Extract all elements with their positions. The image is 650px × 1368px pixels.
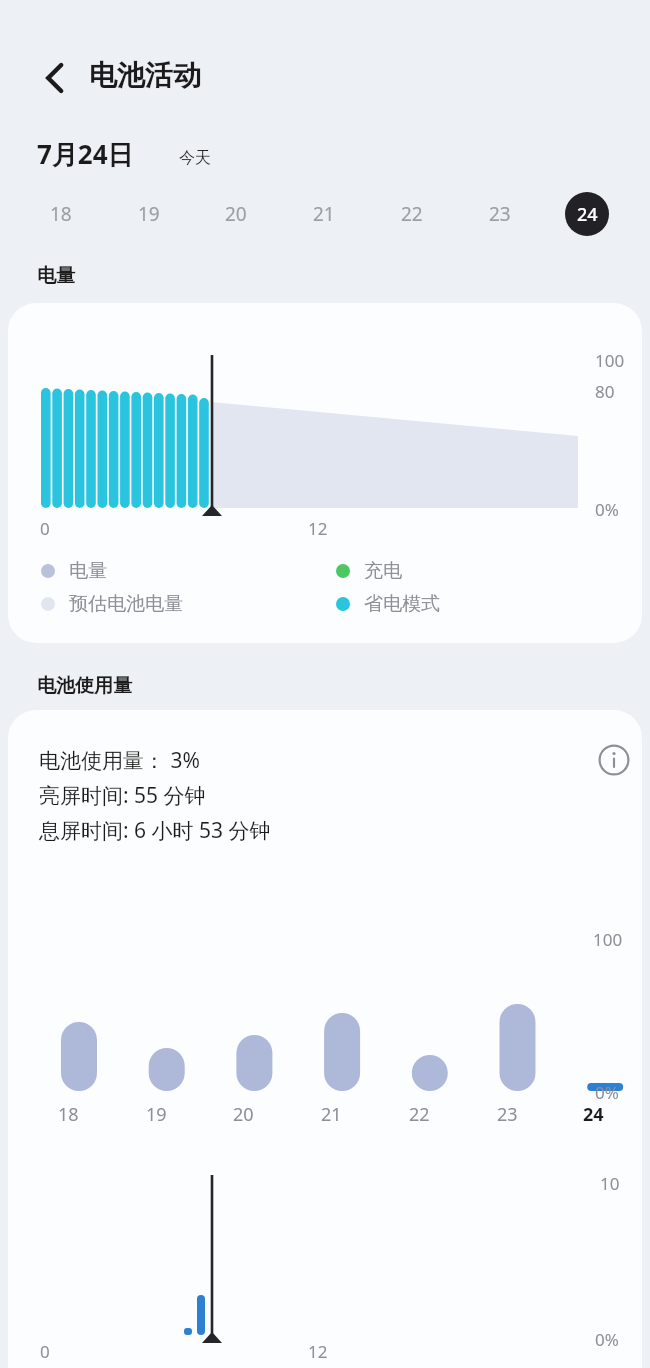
staticText: 23 bbox=[489, 201, 511, 227]
button[interactable]: 23 bbox=[478, 192, 522, 236]
staticText: 亮屏时间: 55 分钟 bbox=[39, 781, 206, 810]
staticText: 电池使用量： 3% bbox=[39, 746, 200, 775]
button[interactable]: 24 bbox=[565, 192, 609, 236]
staticText: 12 bbox=[308, 1340, 328, 1363]
staticText: 预估电池电量 bbox=[69, 592, 183, 616]
staticText: 19 bbox=[138, 201, 160, 227]
staticText: 23 bbox=[497, 1102, 518, 1127]
staticText: 22 bbox=[401, 201, 423, 227]
staticText: 电池活动 bbox=[89, 58, 201, 93]
staticText: 今天 bbox=[179, 148, 211, 168]
button[interactable]: 充电 bbox=[336, 559, 402, 583]
staticText: 21 bbox=[313, 201, 335, 227]
staticText: 10 bbox=[600, 1172, 620, 1195]
button[interactable]: 预估电池电量 bbox=[41, 592, 183, 616]
button[interactable]: 省电模式 bbox=[336, 592, 440, 616]
staticText: 电量 bbox=[37, 264, 75, 288]
staticText: 24 bbox=[583, 1102, 604, 1127]
staticText: 12 bbox=[308, 517, 328, 540]
staticText: 100 bbox=[595, 349, 625, 372]
staticText: 20 bbox=[225, 201, 247, 227]
staticText: 0 bbox=[40, 1340, 50, 1363]
button[interactable]: 20 bbox=[214, 192, 258, 236]
button[interactable]: 21 bbox=[302, 192, 346, 236]
staticText: 22 bbox=[409, 1102, 430, 1127]
staticText: 21 bbox=[321, 1102, 342, 1127]
staticText: 80 bbox=[595, 380, 615, 403]
staticText: 电池使用量 bbox=[37, 674, 132, 698]
staticText: 0 bbox=[40, 517, 50, 540]
staticText: 19 bbox=[146, 1102, 167, 1127]
staticText: 息屏时间: 6 小时 53 分钟 bbox=[39, 816, 271, 845]
staticText: 100 bbox=[593, 928, 623, 951]
staticText: 0% bbox=[595, 498, 619, 521]
button[interactable]: 电量 bbox=[41, 559, 107, 583]
staticText: 充电 bbox=[364, 559, 402, 583]
staticText: 24 bbox=[577, 202, 598, 227]
staticText: 20 bbox=[233, 1102, 254, 1127]
staticText: 7月24日 bbox=[37, 136, 134, 172]
button[interactable]: Info bbox=[584, 730, 642, 790]
button[interactable]: 19 bbox=[127, 192, 171, 236]
button[interactable]: 22 bbox=[390, 192, 434, 236]
staticText: 省电模式 bbox=[364, 592, 440, 616]
staticText: 0% bbox=[595, 1328, 619, 1351]
staticText: 18 bbox=[58, 1102, 79, 1127]
button[interactable]: 18 bbox=[39, 192, 83, 236]
staticText: 0% bbox=[595, 1081, 619, 1104]
staticText: 18 bbox=[50, 201, 72, 227]
button[interactable]: Back bbox=[30, 56, 74, 100]
staticText: 电量 bbox=[69, 559, 107, 583]
